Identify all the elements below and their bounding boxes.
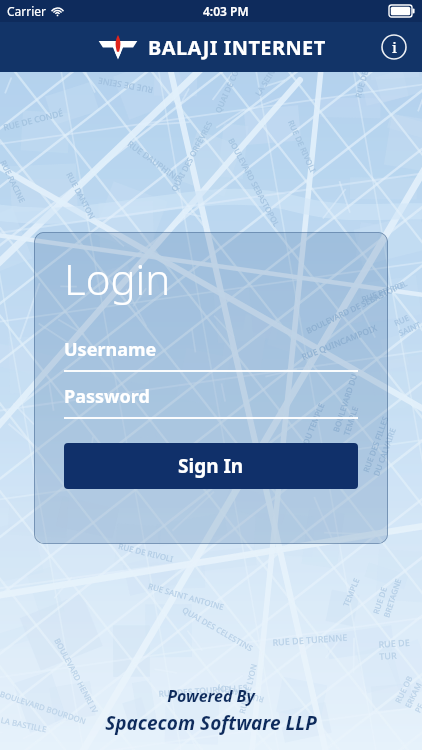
staticText: Carrier: [7, 3, 47, 19]
staticText: 4:03 PM: [203, 3, 249, 19]
button[interactable]: Information: [378, 31, 410, 63]
staticText: Password: [64, 384, 150, 409]
staticText: Powered By: [167, 685, 255, 707]
staticText: BALAJI INTERNET: [148, 34, 326, 61]
button[interactable]: Sign In: [64, 443, 358, 489]
staticText: Sign In: [178, 453, 244, 479]
staticText: Spacecom Software LLP: [105, 710, 317, 736]
button[interactable]: Password: [64, 384, 358, 419]
staticText: Login: [64, 250, 171, 307]
staticText: i: [392, 37, 397, 57]
button[interactable]: Username: [64, 337, 358, 372]
staticText: Username: [64, 337, 157, 362]
